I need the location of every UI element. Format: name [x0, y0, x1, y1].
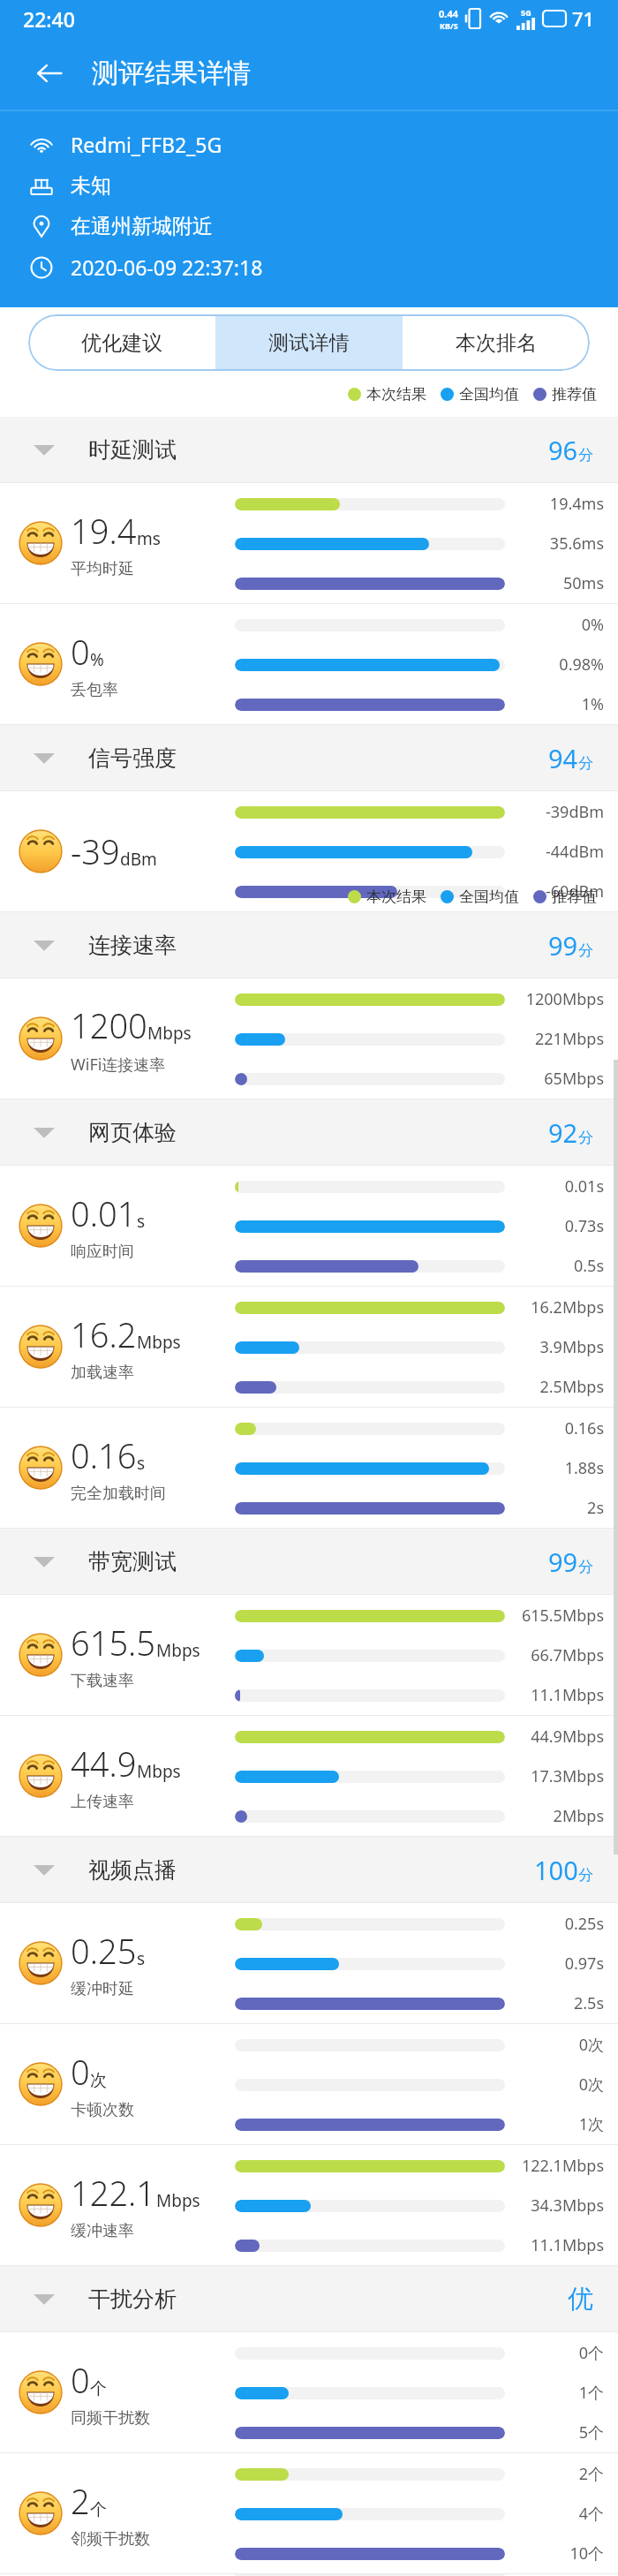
staticText: 带宽测试 [88, 1548, 177, 1575]
staticText: 92 [548, 1115, 578, 1150]
staticText: Redmi_FFB2_5G [71, 131, 222, 158]
staticText: 次 [90, 2070, 107, 2091]
staticText: 缓冲时延 [71, 1979, 134, 1999]
staticText: Mbps [156, 2189, 200, 2212]
staticText: 16.2 [71, 1311, 137, 1357]
staticText: 1.88s [564, 1457, 604, 1479]
staticText: 0.16 [71, 1432, 137, 1478]
staticText: 35.6ms [549, 533, 604, 555]
staticText: 0 [71, 2049, 90, 2095]
staticText: 66.7Mbps [531, 1644, 604, 1666]
staticText: 1% [581, 693, 604, 715]
staticText: 3.9Mbps [539, 1336, 604, 1358]
staticText: 615.5Mbps [521, 1605, 604, 1627]
staticText: 19.4ms [549, 493, 604, 515]
staticText: 分 [578, 446, 593, 465]
staticText: Mbps [137, 1331, 181, 1354]
button[interactable]: 2 [0, 2453, 618, 2573]
button[interactable]: 0 [0, 604, 618, 724]
staticText: 网页体验 [88, 1119, 177, 1146]
staticText: 11.1Mbps [531, 2234, 604, 2256]
staticText: KB/S [440, 20, 458, 31]
staticText: 2个 [578, 2463, 604, 2485]
staticText: 推荐值 [552, 888, 597, 906]
staticText: 0.97s [564, 1953, 604, 1975]
staticText: 71 [572, 5, 595, 32]
staticText: 2.5Mbps [539, 1376, 604, 1398]
staticText: dBm [120, 848, 157, 871]
staticText: 19.4 [71, 508, 137, 554]
button[interactable]: 0.16 [0, 1408, 618, 1528]
staticText: 0.44 [439, 7, 458, 20]
staticText: 同频干扰数 [71, 2408, 150, 2429]
staticText: 邻频干扰数 [71, 2529, 150, 2550]
staticText: 分 [578, 1129, 593, 1147]
button[interactable]: 连接速率 [0, 912, 618, 978]
staticText: s [137, 1452, 146, 1475]
button[interactable]: 优化建议 [28, 314, 215, 371]
button[interactable]: ?(未测试) [0, 2574, 618, 2576]
staticText: s [137, 1947, 146, 1970]
staticText: -44dBm [546, 841, 604, 863]
staticText: 1200Mbps [525, 988, 604, 1010]
staticText: 卡顿次数 [71, 2100, 134, 2120]
staticText: Mbps [137, 1760, 181, 1783]
staticText: 全国均值 [459, 385, 519, 404]
staticText: s [137, 1210, 146, 1233]
staticText: 分 [578, 1866, 593, 1885]
staticText: 2020-06-09 22:37:18 [71, 253, 263, 281]
button[interactable]: 0 [0, 2332, 618, 2452]
staticText: 信号强度 [88, 744, 177, 772]
button[interactable]: 0.01 [0, 1166, 618, 1286]
button[interactable]: 网页体验 [0, 1099, 618, 1165]
button[interactable]: 1200 [0, 978, 618, 1099]
staticText: 0次 [578, 2074, 604, 2096]
staticText: 完全加载时间 [71, 1484, 166, 1504]
staticText: 0.01 [71, 1190, 137, 1236]
staticText: 34.3Mbps [531, 2195, 604, 2217]
button[interactable]: 0.25 [0, 1903, 618, 2023]
staticText: 44.9Mbps [531, 1726, 604, 1748]
staticText: 2Mbps [553, 1805, 604, 1827]
staticText: 推荐值 [552, 385, 597, 404]
staticText: 0.73s [564, 1215, 604, 1237]
button[interactable]: 0 [0, 2024, 618, 2144]
staticText: 视频点播 [88, 1856, 177, 1884]
button[interactable]: 615.5 [0, 1595, 618, 1715]
staticText: 5个 [578, 2421, 604, 2444]
staticText: 平均时延 [71, 559, 134, 579]
staticText: 2 [71, 2478, 90, 2524]
button[interactable]: 干扰分析 [0, 2266, 618, 2331]
button[interactable]: 视频点播 [0, 1837, 618, 1902]
staticText: -39dBm [546, 801, 604, 823]
button[interactable]: 带宽测试 [0, 1529, 618, 1594]
button[interactable]: -39 [0, 791, 618, 911]
button[interactable]: Back [30, 54, 69, 93]
button[interactable]: 16.2 [0, 1287, 618, 1407]
staticText: 0% [581, 614, 604, 636]
staticText: 221Mbps [535, 1028, 604, 1050]
staticText: 上传速率 [71, 1792, 134, 1812]
staticText: 缓冲速率 [71, 2221, 134, 2241]
button[interactable]: 测试详情 [215, 314, 403, 371]
button[interactable]: 本次排名 [403, 314, 590, 371]
staticText: 加载速率 [71, 1363, 134, 1383]
staticText: Mbps [156, 1639, 200, 1662]
staticText: 11.1Mbps [531, 1684, 604, 1706]
button[interactable]: 44.9 [0, 1716, 618, 1836]
staticText: 0.5s [573, 1255, 604, 1277]
staticText: 0个 [578, 2342, 604, 2364]
staticText: 99 [548, 928, 578, 963]
staticText: 44.9 [71, 1741, 137, 1787]
staticText: 在通州新城附近 [71, 214, 213, 239]
staticText: 2s [587, 1497, 604, 1519]
staticText: 10个 [569, 2542, 604, 2565]
button[interactable]: 信号强度 [0, 725, 618, 790]
button[interactable]: 122.1 [0, 2145, 618, 2265]
staticText: 优 [568, 2283, 593, 2315]
button[interactable]: 19.4 [0, 483, 618, 603]
staticText: -60dBm [546, 880, 604, 903]
staticText: 0 [71, 2357, 90, 2403]
button[interactable]: 时延测试 [0, 417, 618, 482]
staticText: ?(未测试) [71, 2574, 173, 2576]
